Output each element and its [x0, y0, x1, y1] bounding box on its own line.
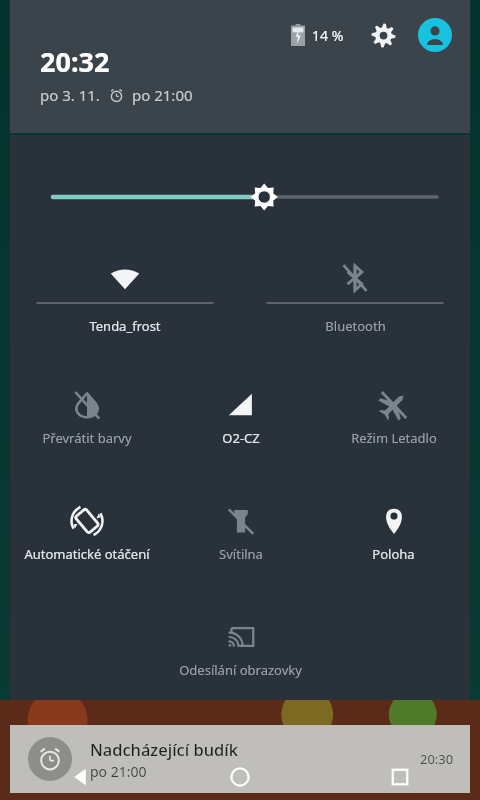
staticText: Automatické otáčení — [24, 545, 150, 563]
button[interactable]: User profile — [418, 18, 452, 52]
button[interactable]: Svítilna — [164, 497, 317, 583]
staticText: Odesílání obrazovky — [179, 661, 302, 679]
button[interactable]: Tenda_frost — [10, 255, 240, 347]
button[interactable]: Poloha — [317, 497, 470, 583]
staticText: po 21:00 — [132, 85, 193, 105]
staticText: Bluetooth — [325, 317, 386, 335]
staticText: Tenda_frost — [89, 317, 161, 335]
button[interactable]: Back — [0, 754, 160, 800]
staticText: 14 % — [312, 26, 344, 45]
button[interactable]: Home — [160, 754, 320, 800]
staticText: 20:32 — [40, 43, 110, 80]
staticText: Režim Letadlo — [351, 429, 437, 447]
button[interactable]: Odesílání obrazovky — [164, 613, 317, 699]
button[interactable]: Brightness — [10, 177, 470, 217]
staticText: po 3. 11. — [40, 85, 100, 105]
staticText: Převrátit barvy — [42, 429, 132, 447]
staticText: Svítilna — [219, 545, 263, 563]
staticText: po 21:00 — [90, 762, 147, 781]
button[interactable]: O2-CZ — [164, 381, 317, 467]
button[interactable]: Automatické otáčení — [10, 497, 164, 583]
button[interactable]: Settings — [366, 18, 400, 52]
staticText: Nadcházející budík — [90, 738, 238, 760]
staticText: 20:30 — [420, 750, 454, 768]
button[interactable]: Režim Letadlo — [317, 381, 470, 467]
button[interactable]: Recent apps — [320, 754, 480, 800]
button[interactable]: Nadcházející budík — [10, 725, 470, 793]
staticText: O2-CZ — [222, 429, 260, 447]
button[interactable]: Převrátit barvy — [10, 381, 164, 467]
staticText: Poloha — [372, 545, 415, 563]
button[interactable]: Bluetooth — [240, 255, 470, 347]
